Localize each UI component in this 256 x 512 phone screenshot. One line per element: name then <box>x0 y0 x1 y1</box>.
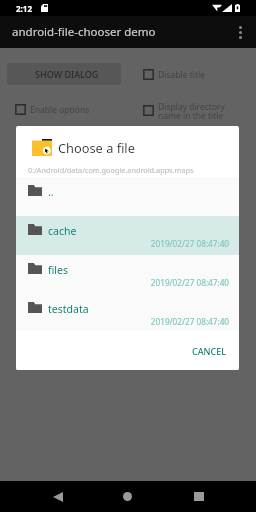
staticText: 2019/02/27 08:47:40 <box>16 277 229 288</box>
staticText: 0:/Android/data/com.google.android.apps.… <box>28 165 194 175</box>
button[interactable]: cache <box>16 216 239 255</box>
button[interactable]: Display directory name in the title <box>143 105 225 126</box>
button[interactable]: files <box>16 255 239 294</box>
button[interactable]: CANCEL <box>186 340 233 362</box>
staticText: Choose a file <box>58 139 135 156</box>
button[interactable]: More options <box>224 16 256 48</box>
staticText: cache <box>48 224 77 238</box>
staticText: SHOW DIALOG <box>35 68 99 80</box>
staticText: testdata <box>48 302 89 316</box>
button[interactable]: SHOW DIALOG <box>7 63 121 85</box>
button[interactable]: testdata <box>16 294 239 331</box>
staticText: 2:12 <box>16 3 32 14</box>
button[interactable]: Disable title <box>143 69 205 81</box>
button[interactable]: Recents <box>179 481 218 512</box>
button[interactable]: Back <box>37 481 76 512</box>
staticText: Display directory name in the title <box>158 101 225 122</box>
staticText: CANCEL <box>192 345 227 357</box>
staticText: files <box>48 263 68 277</box>
button[interactable]: .. <box>16 177 239 216</box>
staticText: 2019/02/27 08:47:40 <box>16 238 229 249</box>
staticText: Disable title <box>158 69 205 81</box>
staticText: android-file-chooser demo <box>12 24 156 40</box>
button[interactable]: Enable options <box>15 104 90 116</box>
staticText: Enable options <box>30 104 90 116</box>
staticText: 2019/02/27 08:47:40 <box>16 316 229 327</box>
staticText: .. <box>48 185 54 199</box>
button[interactable]: Home <box>108 481 147 512</box>
